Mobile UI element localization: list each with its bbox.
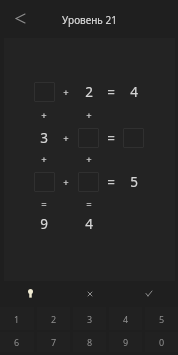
button[interactable]: Empty cell	[34, 82, 55, 102]
button[interactable]: Empty cell	[123, 128, 144, 148]
staticText: +	[63, 176, 69, 189]
staticText: 9	[123, 336, 129, 348]
button[interactable]: Empty cell	[78, 172, 99, 192]
staticText: 8	[87, 336, 93, 348]
staticText: 4	[130, 83, 138, 101]
button[interactable]: 5	[145, 307, 178, 330]
button[interactable]: 4	[109, 307, 142, 330]
staticText: 2	[51, 313, 57, 325]
staticText: +	[41, 109, 47, 122]
staticText: 6	[14, 336, 20, 348]
button[interactable]: 2	[37, 307, 70, 330]
staticText: =	[86, 198, 92, 211]
staticText: 4	[123, 313, 129, 325]
staticText: Уровень 21	[62, 13, 117, 27]
button[interactable]: 3	[73, 307, 106, 330]
button[interactable]: 0	[145, 332, 178, 352]
staticText: =	[41, 198, 47, 211]
button[interactable]: 7	[37, 332, 70, 352]
staticText: 5	[159, 313, 165, 325]
button[interactable]: Clear	[60, 281, 119, 306]
staticText: +	[63, 86, 69, 99]
staticText: 3	[87, 313, 93, 325]
staticText: =	[107, 173, 115, 191]
staticText: =	[107, 129, 115, 147]
staticText: 9	[40, 215, 48, 233]
staticText: =	[107, 83, 115, 101]
staticText: 7	[51, 336, 57, 348]
staticText: 4	[85, 215, 93, 233]
staticText: +	[63, 132, 69, 145]
staticText: 5	[130, 173, 138, 191]
staticText: 0	[159, 336, 165, 348]
button[interactable]: 9	[109, 332, 142, 352]
button[interactable]: Check	[119, 281, 178, 306]
staticText: 2	[85, 83, 93, 101]
staticText: 3	[40, 129, 48, 147]
button[interactable]: Hint	[0, 281, 60, 306]
button[interactable]: 1	[0, 307, 34, 330]
staticText: +	[86, 109, 92, 122]
staticText: +	[86, 153, 92, 166]
staticText: 1	[14, 313, 20, 325]
button[interactable]: 8	[73, 332, 106, 352]
button[interactable]: Empty cell	[78, 128, 99, 148]
button[interactable]: 6	[0, 332, 34, 352]
button[interactable]: Empty cell	[34, 172, 55, 192]
staticText: +	[41, 153, 47, 166]
button[interactable]: Back	[8, 6, 32, 30]
